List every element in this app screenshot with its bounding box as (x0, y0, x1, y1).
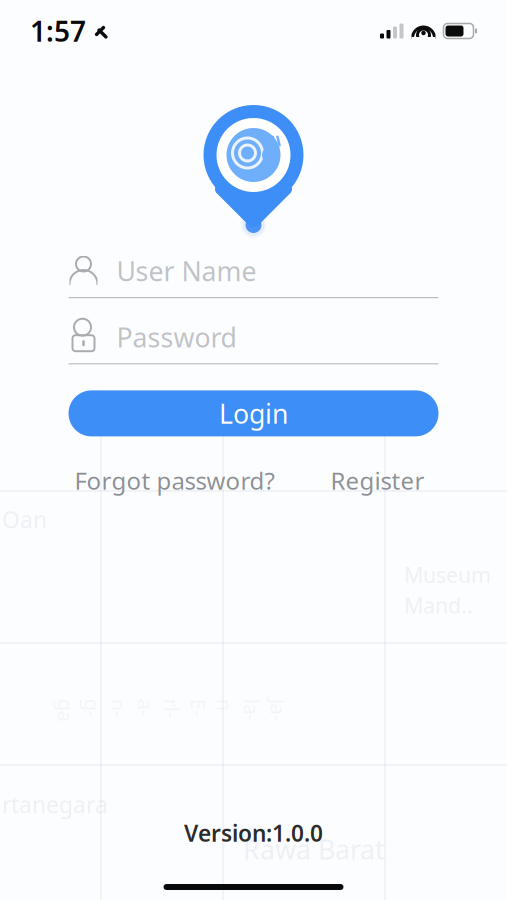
staticText: 1:57 (30, 12, 86, 50)
staticText: Senayan (195, 401, 296, 434)
button[interactable]: Forgot password? (68, 458, 280, 502)
staticText: Museum (404, 561, 491, 589)
staticText: rtanegara (2, 789, 108, 819)
button[interactable]: Login (68, 390, 438, 436)
staticText: Version:1.0.0 (184, 818, 323, 848)
staticText: Password (116, 319, 236, 355)
staticText: Register (330, 464, 424, 496)
staticText: Rawa Barat (243, 831, 385, 867)
staticText: Oan (2, 504, 47, 535)
staticText: User Name (116, 253, 256, 289)
button[interactable]: Register (324, 458, 430, 502)
staticText: Forgot password? (74, 464, 274, 496)
staticText: Login (219, 396, 288, 431)
staticText: Mand.. (404, 591, 473, 619)
